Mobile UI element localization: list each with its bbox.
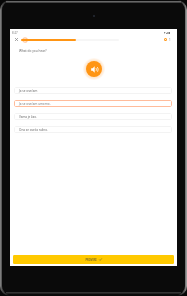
button[interactable]: Lives: 1 — [164, 37, 171, 42]
staticText: 8:27 — [12, 31, 18, 35]
button[interactable]: Ja se osećam umorno. — [14, 100, 172, 107]
button[interactable]: Close — [14, 37, 19, 42]
button[interactable]: PROVERI — [13, 255, 174, 264]
button[interactable]: Ona se oseća ružno. — [14, 126, 172, 133]
button[interactable]: Vama je žao. — [14, 113, 172, 120]
staticText: Ja se osećam — [19, 89, 38, 93]
staticText: Vama je žao. — [19, 115, 37, 119]
button[interactable]: Ja se osećam — [14, 87, 172, 94]
staticText: What do you hear? — [19, 49, 47, 53]
staticText: 1 — [169, 38, 171, 42]
staticText: Ja se osećam umorno. — [19, 102, 51, 106]
button[interactable]: Play audio — [83, 58, 105, 80]
staticText: Ona se oseća ružno. — [19, 128, 48, 132]
staticText: PROVERI — [85, 258, 97, 262]
